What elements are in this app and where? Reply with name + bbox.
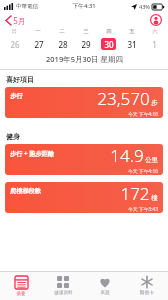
staticText: 今天 下午4:16: [128, 111, 158, 118]
button[interactable]: 5月: [4, 13, 28, 28]
button[interactable]: 來源: [84, 272, 126, 300]
staticText: 日: [11, 28, 17, 35]
staticText: 步: [151, 99, 158, 107]
staticText: 醫療卡: [140, 290, 154, 296]
staticText: 172: [120, 182, 150, 205]
staticText: 樓: [151, 194, 158, 202]
staticText: 摘要: [16, 291, 26, 297]
button[interactable]: 爬樓梯段數: [5, 182, 163, 213]
staticText: 27: [34, 39, 44, 50]
staticText: 健康資料: [54, 290, 73, 296]
staticText: 5月: [13, 15, 26, 26]
button[interactable]: 28: [55, 38, 70, 50]
staticText: 三: [83, 28, 89, 35]
button[interactable]: 醫療卡: [126, 272, 168, 300]
staticText: 爬樓梯段數: [10, 187, 41, 195]
button[interactable]: 步行 + 跑步距離: [5, 144, 163, 175]
staticText: 一: [35, 28, 41, 35]
staticText: 步行: [10, 92, 23, 100]
staticText: 中華電信: [16, 3, 38, 10]
button[interactable]: 健康資料: [42, 272, 84, 300]
staticText: 1: [152, 39, 157, 50]
staticText: 六: [152, 28, 158, 35]
staticText: 五: [129, 28, 135, 35]
staticText: 30: [104, 39, 114, 50]
staticText: 健身: [6, 132, 20, 141]
button[interactable]: 步行: [5, 87, 163, 118]
button[interactable]: Profile: [149, 13, 163, 27]
staticText: 2019年5月30日 星期四: [46, 54, 123, 64]
staticText: 14.9: [110, 144, 144, 167]
staticText: 今天 下午4:16: [128, 168, 158, 175]
staticText: 28: [58, 39, 68, 50]
staticText: 來源: [100, 290, 110, 296]
button[interactable]: 摘要: [0, 272, 42, 300]
staticText: 四: [106, 28, 112, 35]
staticText: 31: [127, 39, 137, 50]
button[interactable]: 31: [124, 38, 139, 50]
staticText: 43%: [139, 3, 150, 10]
button[interactable]: 1: [147, 38, 162, 50]
staticText: 29: [81, 39, 91, 50]
button[interactable]: 27: [31, 38, 46, 50]
staticText: 喜好項目: [6, 75, 34, 84]
button[interactable]: 26: [7, 38, 22, 50]
staticText: 二: [59, 28, 65, 35]
button[interactable]: 30: [101, 38, 116, 50]
staticText: 公里: [145, 156, 158, 164]
staticText: 23,570: [97, 87, 150, 110]
staticText: 下午4:31: [72, 2, 96, 10]
staticText: 步行 + 跑步距離: [10, 149, 54, 157]
staticText: 26: [10, 39, 20, 50]
staticText: 今天 下午3:43: [128, 206, 158, 213]
button[interactable]: 29: [78, 38, 93, 50]
